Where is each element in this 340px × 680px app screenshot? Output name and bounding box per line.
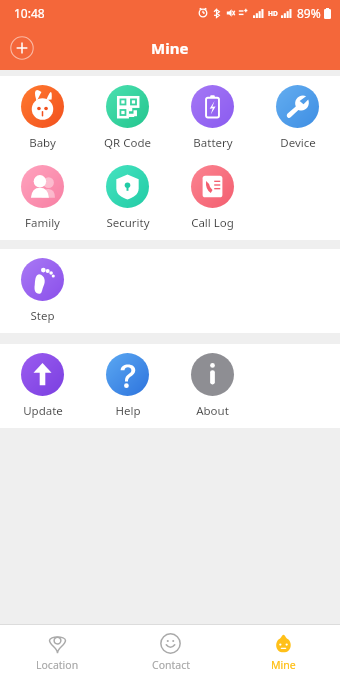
staticText: Family [25,215,60,231]
button[interactable]: Help [85,351,170,421]
other: Step [21,258,64,301]
staticText: Update [23,403,63,419]
staticText: HD [268,9,278,18]
staticText: QR Code [104,135,151,151]
staticText: Help [115,403,141,419]
staticText: Device [280,135,316,151]
staticText: Step [30,308,55,324]
other: Battery [191,85,234,128]
other: About [191,353,234,396]
button[interactable]: Call Log [170,163,255,233]
button[interactable]: Security [85,163,170,233]
staticText: Mine [151,38,189,58]
staticText: About [196,403,229,419]
button[interactable]: Add [8,34,36,62]
button[interactable]: Update [0,351,85,421]
button[interactable]: Baby [0,83,85,153]
staticText: 10:48 [14,5,45,21]
other: Help [106,353,149,396]
button[interactable]: About [170,351,255,421]
button[interactable]: Location [0,625,114,680]
other: Baby [21,85,64,128]
other: QR Code [106,85,149,128]
staticText: Call Log [191,215,234,231]
button[interactable]: Contact [114,625,227,680]
staticText: 89% [297,5,321,21]
button[interactable]: Device [255,83,340,153]
staticText: Contact [152,658,190,672]
button[interactable]: Mine [227,625,340,680]
other: Update [21,353,64,396]
other: Device [276,85,319,128]
staticText: Mine [271,658,296,672]
staticText: Location [36,658,79,672]
staticText: Baby [29,135,56,151]
button[interactable]: Battery [170,83,255,153]
button[interactable]: Family [0,163,85,233]
button[interactable]: Step [0,256,85,326]
other: Security [106,165,149,208]
button[interactable]: QR Code [85,83,170,153]
staticText: Battery [193,135,233,151]
staticText: Security [106,215,150,231]
other: Call Log [191,165,234,208]
other: Family [21,165,64,208]
